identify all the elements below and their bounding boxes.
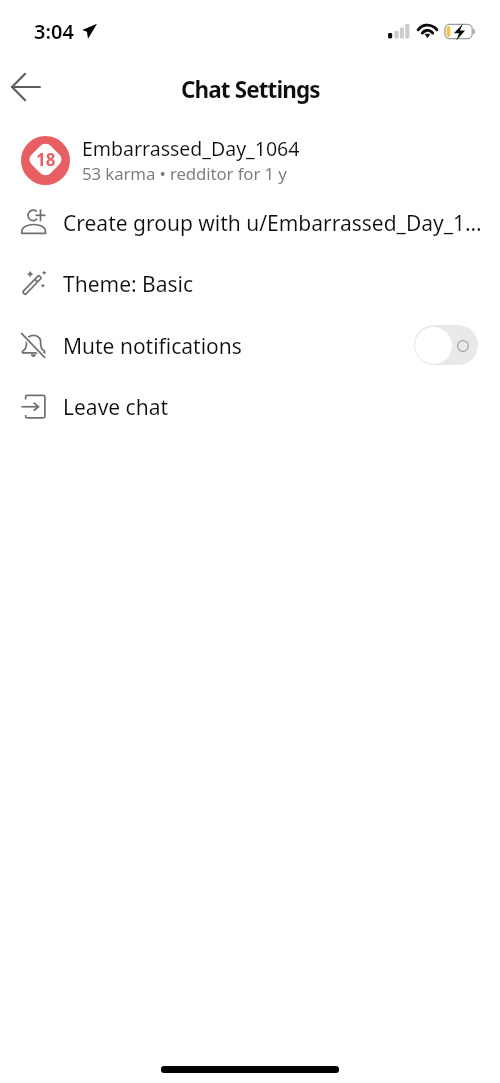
staticText: Embarrassed_Day_1064 bbox=[82, 135, 300, 162]
button[interactable]: Mute notifications toggle bbox=[414, 325, 478, 365]
staticText: Chat Settings bbox=[181, 74, 320, 105]
button[interactable]: Theme: Basic bbox=[0, 253, 500, 315]
staticText: Create group with u/Embarrassed_Day_1… bbox=[63, 209, 500, 238]
staticText: 3:04 bbox=[34, 18, 74, 45]
staticText: Leave chat bbox=[63, 393, 500, 422]
button[interactable]: Back bbox=[1, 63, 51, 111]
button[interactable]: Mute notifications bbox=[0, 315, 500, 377]
button[interactable]: Create group with u/Embarrassed_Day_1… bbox=[0, 192, 500, 254]
staticText: Mute notifications bbox=[63, 332, 414, 361]
button[interactable]: 18 bbox=[0, 128, 500, 192]
button[interactable]: Leave chat bbox=[0, 376, 500, 438]
staticText: 18 bbox=[36, 148, 56, 171]
staticText: 53 karma • redditor for 1 y bbox=[82, 162, 287, 185]
staticText: Theme: Basic bbox=[63, 270, 500, 299]
